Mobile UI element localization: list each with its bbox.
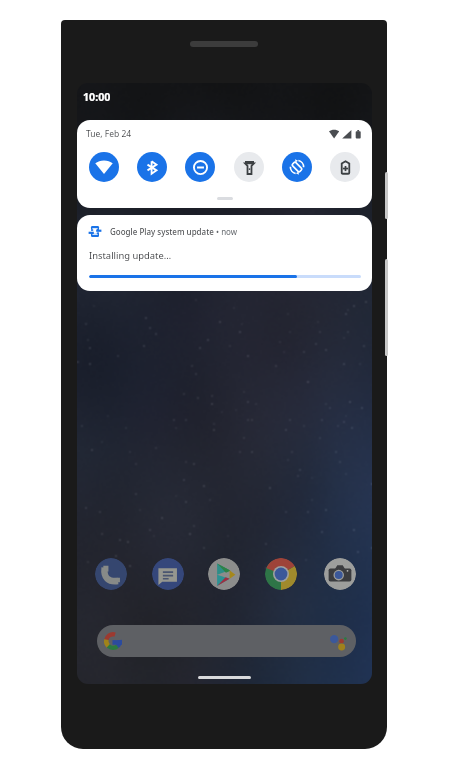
staticText: • now — [214, 226, 238, 237]
button[interactable]: Camera — [324, 558, 356, 590]
button[interactable]: Google Play system update — [77, 215, 372, 291]
button[interactable]: Battery saver — [330, 152, 360, 182]
staticText: 10:00 — [83, 90, 111, 105]
staticText: Tue, Feb 24 — [86, 128, 132, 140]
button[interactable]: Messages — [152, 558, 184, 590]
button[interactable]: Bluetooth — [137, 152, 167, 182]
button[interactable]: Flashlight — [234, 152, 264, 182]
button[interactable]: Play Store — [208, 558, 240, 590]
button[interactable] — [97, 625, 356, 657]
button[interactable]: Do not disturb — [185, 152, 215, 182]
staticText: Installing update… — [89, 249, 172, 262]
staticText: Google Play system update — [110, 226, 214, 237]
button[interactable]: Wi-Fi — [89, 152, 119, 182]
button[interactable]: Auto-rotate — [282, 152, 312, 182]
button[interactable]: Phone — [95, 558, 127, 590]
button[interactable]: Chrome — [265, 558, 297, 590]
